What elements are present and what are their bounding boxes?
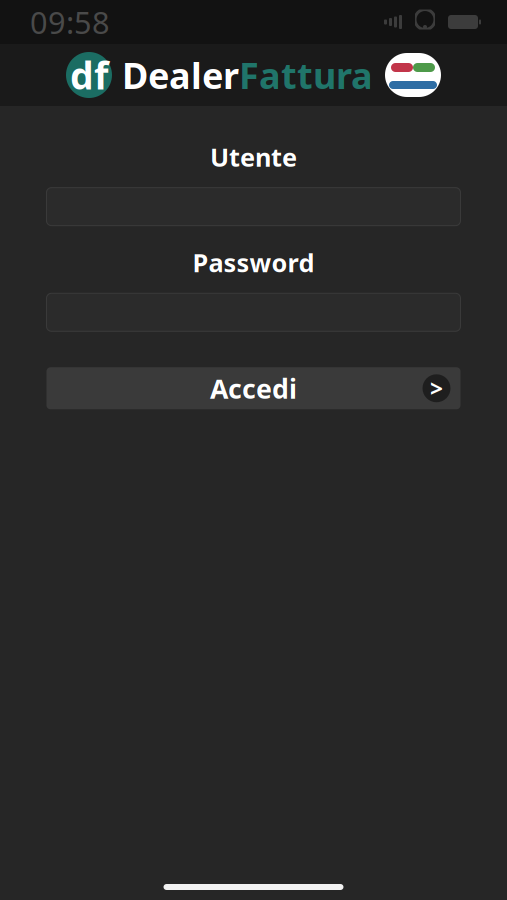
staticText: >: [430, 373, 443, 403]
staticText: Password: [192, 246, 314, 279]
staticText: Utente: [210, 140, 297, 174]
staticText: Accedi: [210, 371, 297, 406]
staticText: Dealer: [122, 51, 239, 99]
button[interactable]: Accedi: [46, 367, 460, 409]
staticText: Fattura: [239, 51, 373, 99]
staticText: 09:58: [30, 2, 110, 42]
staticText: df: [70, 50, 108, 100]
